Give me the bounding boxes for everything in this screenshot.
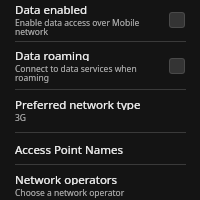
staticText: Network operators <box>15 172 118 185</box>
button[interactable]: Data enabled <box>0 0 200 41</box>
staticText: Choose a network operator <box>15 187 125 192</box>
staticText: Access Point Names <box>15 142 123 155</box>
button[interactable]: Data enabled <box>164 7 190 33</box>
staticText: 3G <box>15 112 27 124</box>
button[interactable]: Data roaming <box>164 53 190 79</box>
button[interactable]: Preferred network type <box>0 90 200 132</box>
button[interactable]: Data roaming <box>0 42 200 89</box>
staticText: Connect to data services when roaming <box>15 63 137 84</box>
staticText: Enable data access over Mobile network <box>15 17 140 38</box>
staticText: Preferred network type <box>15 97 141 110</box>
staticText: Data enabled <box>15 2 88 15</box>
button[interactable]: Access Point Names <box>0 133 200 164</box>
button[interactable]: Network operators <box>0 165 200 200</box>
staticText: Data roaming <box>15 48 90 61</box>
